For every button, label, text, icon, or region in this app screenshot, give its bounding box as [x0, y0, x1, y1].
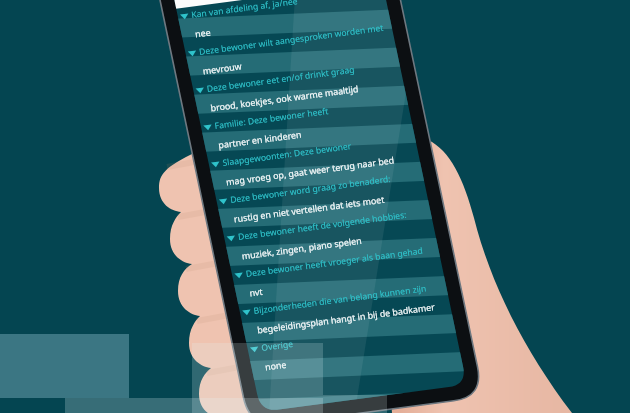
button[interactable]: Hand holding a phone showing a resident … [0, 0, 630, 413]
